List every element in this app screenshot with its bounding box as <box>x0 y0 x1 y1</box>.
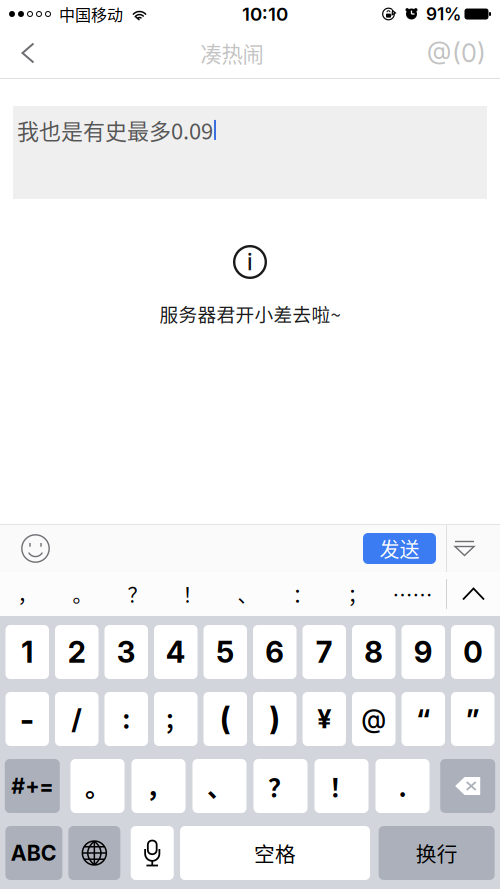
button[interactable]: More <box>447 573 500 615</box>
staticText: ， <box>17 579 37 608</box>
button[interactable]: 。 <box>55 573 110 615</box>
button[interactable]: ； <box>154 692 197 746</box>
staticText: ， <box>146 768 171 804</box>
staticText: 6 <box>265 634 284 670</box>
button[interactable]: ¥ <box>302 692 346 746</box>
staticText: 中国移动 <box>51 2 131 26</box>
button[interactable]: . <box>375 759 429 813</box>
button[interactable]: @(0) <box>408 29 500 77</box>
button[interactable]: ； <box>330 573 385 615</box>
button[interactable]: Hide keyboard <box>447 525 482 572</box>
staticText: 2 <box>68 634 86 670</box>
button[interactable]: 、 <box>220 573 275 615</box>
button[interactable] <box>68 826 120 880</box>
button[interactable]: 2 <box>55 625 98 679</box>
button[interactable]: Emoji <box>8 525 63 572</box>
button[interactable]: @ <box>352 692 395 746</box>
button[interactable]: 空格 <box>180 826 370 880</box>
button[interactable]: ) <box>253 692 296 746</box>
button[interactable]: ！ <box>165 573 220 615</box>
button[interactable]: : <box>104 692 148 746</box>
staticText: 我也是有史最多0.09 <box>17 114 213 146</box>
button[interactable] <box>440 759 495 813</box>
staticText: ！ <box>329 768 354 804</box>
staticText: 凑热闹 <box>200 38 263 68</box>
staticText: ) <box>269 700 280 737</box>
button[interactable]: ： <box>275 573 330 615</box>
staticText: “ <box>416 702 430 736</box>
button[interactable]: ！ <box>314 759 368 813</box>
staticText: i <box>247 248 253 276</box>
button[interactable]: ( <box>203 692 247 746</box>
staticText: 9 <box>414 634 433 670</box>
button[interactable]: ” <box>451 692 494 746</box>
staticText: / <box>71 702 82 736</box>
staticText: 、 <box>207 768 232 804</box>
staticText: 91% <box>418 3 465 24</box>
staticText: ？ <box>127 579 147 608</box>
staticText: 服务器君开小差去啦~ <box>159 300 340 327</box>
staticText: #+= <box>11 773 53 799</box>
staticText: 5 <box>216 634 234 670</box>
staticText: 7 <box>316 634 333 670</box>
staticText: 3 <box>117 634 136 670</box>
button[interactable] <box>131 826 174 880</box>
button[interactable]: ？ <box>253 759 307 813</box>
button[interactable]: 7 <box>302 625 346 679</box>
button[interactable]: 6 <box>253 625 296 679</box>
button[interactable]: 1 <box>5 625 49 679</box>
staticText: . <box>398 768 406 804</box>
button[interactable]: / <box>55 692 98 746</box>
button[interactable]: 8 <box>352 625 395 679</box>
button[interactable]: 9 <box>401 625 445 679</box>
button[interactable]: 3 <box>104 625 148 679</box>
staticText: ； <box>347 579 367 608</box>
staticText: ！ <box>182 579 202 608</box>
button[interactable]: 5 <box>203 625 247 679</box>
staticText: : <box>122 703 130 735</box>
button[interactable]: ， <box>0 573 55 615</box>
staticText: 。 <box>72 579 92 608</box>
staticText: 8 <box>364 634 383 670</box>
staticText: ： <box>292 579 312 608</box>
button[interactable]: 换行 <box>379 826 495 880</box>
staticText: …… <box>392 579 432 608</box>
staticText: ； <box>164 703 187 735</box>
button[interactable]: “ <box>401 692 445 746</box>
staticText: ¥ <box>317 704 331 734</box>
staticText: 。 <box>85 768 110 804</box>
staticText: @(0) <box>427 38 486 68</box>
button[interactable]: ？ <box>110 573 165 615</box>
staticText: - <box>20 700 35 738</box>
button[interactable]: …… <box>385 573 440 615</box>
staticText: 1 <box>21 634 33 670</box>
button[interactable]: Back <box>0 29 56 77</box>
staticText: 0 <box>463 634 482 670</box>
staticText: 10:10 <box>242 3 288 25</box>
staticText: ？ <box>268 768 293 804</box>
staticText: 换行 <box>416 838 458 868</box>
button[interactable]: 、 <box>192 759 246 813</box>
button[interactable]: 发送 <box>363 533 436 564</box>
button[interactable]: #+= <box>5 759 60 813</box>
staticText: 4 <box>166 634 186 670</box>
staticText: 、 <box>237 579 257 608</box>
staticText: ( <box>220 700 231 737</box>
button[interactable]: 4 <box>154 625 197 679</box>
button[interactable]: ， <box>131 759 185 813</box>
staticText: 发送 <box>379 534 419 563</box>
button[interactable]: 。 <box>70 759 124 813</box>
staticText: 空格 <box>254 838 296 868</box>
button[interactable]: - <box>5 692 49 746</box>
button[interactable]: 0 <box>451 625 494 679</box>
staticText: ABC <box>11 840 57 866</box>
staticText: ” <box>466 702 480 736</box>
button[interactable]: ABC <box>5 826 62 880</box>
staticText: @ <box>361 704 386 734</box>
